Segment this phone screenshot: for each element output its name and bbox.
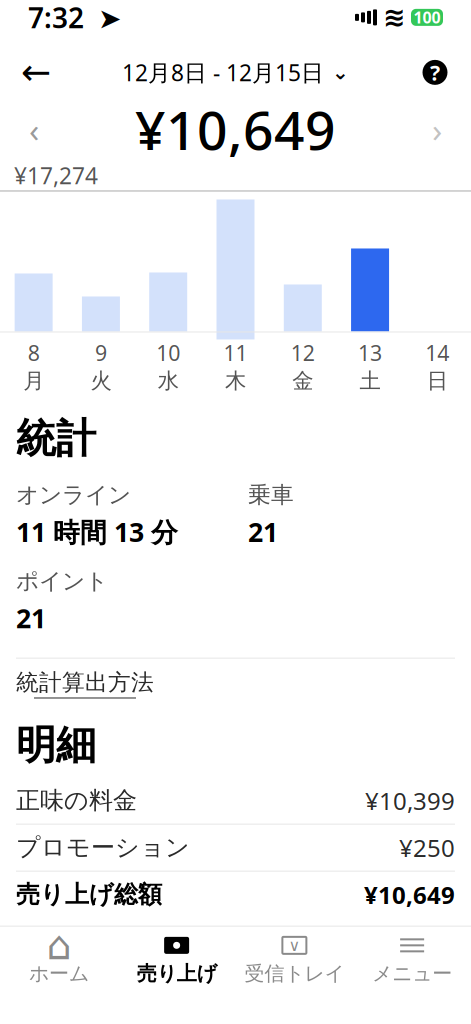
button[interactable]: ヘルプ: [413, 50, 457, 94]
staticText: ¥10,649: [135, 94, 336, 165]
staticText: 月: [23, 368, 44, 394]
staticText: 日: [427, 368, 448, 394]
staticText: 水: [158, 368, 179, 394]
staticText: ¥10,399: [365, 785, 455, 817]
staticText: 13: [358, 338, 382, 367]
staticText: ?: [430, 58, 440, 86]
button[interactable]: 正味の料金: [16, 778, 455, 824]
button[interactable]: 売り上げ総額: [16, 872, 455, 918]
staticText: 正味の料金: [16, 786, 137, 815]
staticText: 受信トレイ: [244, 961, 344, 986]
staticText: 21: [16, 600, 46, 636]
staticText: 11 時間 13 分: [16, 514, 178, 549]
staticText: オンライン: [16, 481, 131, 509]
button[interactable]: 前の週: [12, 107, 56, 151]
staticText: 12: [291, 338, 315, 367]
button[interactable]: 次の週: [415, 107, 459, 151]
staticText: ⌄: [332, 61, 349, 84]
staticText: ¥10,649: [364, 879, 455, 911]
button[interactable]: メニュー: [353, 935, 471, 985]
staticText: 明細: [16, 720, 96, 770]
staticText: ¥17,274: [14, 160, 98, 190]
staticText: メニュー: [372, 961, 452, 986]
staticText: ›: [432, 107, 442, 151]
staticText: 12月8日 - 12月15日: [122, 57, 324, 87]
staticText: 9: [95, 338, 107, 367]
staticText: 木: [225, 368, 246, 394]
staticText: プロモーション: [16, 833, 190, 862]
staticText: 金: [292, 368, 313, 394]
staticText: 7:32 ➤: [28, 0, 121, 36]
staticText: 売り上げ: [137, 961, 217, 986]
staticText: 14: [425, 338, 449, 367]
staticText: 乗車: [248, 481, 294, 509]
button[interactable]: 統計算出方法: [16, 659, 154, 708]
button[interactable]: ∨: [235, 935, 353, 985]
staticText: ∨: [288, 936, 300, 954]
staticText: ‹: [29, 107, 39, 151]
staticText: 火: [90, 368, 111, 394]
staticText: 売り上げ総額: [16, 880, 162, 909]
staticText: ホーム: [29, 961, 89, 986]
staticText: 10: [156, 338, 180, 367]
staticText: 100: [413, 7, 440, 28]
button[interactable]: ⌂: [0, 935, 118, 985]
staticText: ポイント: [16, 567, 108, 595]
staticText: ←: [21, 52, 51, 93]
staticText: ¥250: [399, 832, 455, 864]
button[interactable]: プロモーション: [16, 825, 455, 871]
button[interactable]: 戻る: [14, 50, 58, 94]
staticText: ≋: [383, 2, 405, 32]
staticText: 統計算出方法: [16, 669, 154, 696]
staticText: 統計: [16, 414, 96, 463]
button[interactable]: 12月8日 - 12月15日: [122, 50, 349, 94]
staticText: 21: [248, 514, 278, 549]
staticText: 11: [223, 338, 247, 367]
staticText: 8: [28, 338, 40, 367]
button[interactable]: 売り上げ: [118, 935, 236, 985]
staticText: ⌂: [46, 923, 71, 968]
staticText: 土: [360, 368, 381, 394]
